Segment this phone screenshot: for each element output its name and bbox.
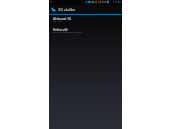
staticText: Režim sítě [53, 28, 68, 32]
button[interactable]: Aktivovat 3G [49, 16, 122, 27]
staticText: 2G/3G (automaticky volen) [53, 30, 83, 33]
staticText: Aktivovat 3G [53, 17, 72, 21]
staticText: 3G / 4G [53, 19, 62, 22]
button[interactable]: Režim sítě [49, 27, 122, 38]
staticText: 3G služba [58, 7, 76, 12]
other: Phone [51, 7, 56, 12]
